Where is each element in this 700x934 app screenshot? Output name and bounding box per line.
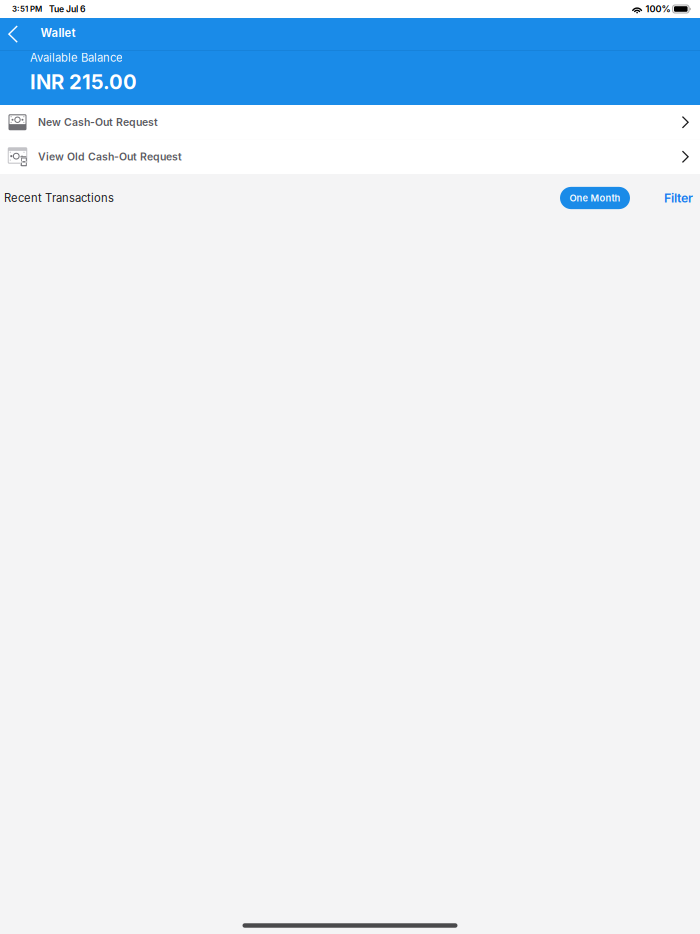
button[interactable]: One Month <box>560 187 630 209</box>
staticText: Tue Jul 6 <box>49 4 86 14</box>
staticText: Filter <box>664 190 693 205</box>
staticText: Recent Transactions <box>4 191 114 205</box>
button[interactable]: New Cash-Out Request <box>0 105 700 139</box>
button[interactable]: Back <box>0 18 26 50</box>
staticText: New Cash-Out Request <box>38 116 158 129</box>
staticText: Available Balance <box>30 51 123 65</box>
staticText: 3:51 PM <box>12 4 42 14</box>
button[interactable]: View Old Cash-Out Request <box>0 139 700 174</box>
staticText: Wallet <box>40 26 75 40</box>
staticText: INR 215.00 <box>30 70 137 94</box>
button[interactable]: Filter <box>630 184 700 211</box>
staticText: One Month <box>569 192 620 204</box>
staticText: 100% <box>646 3 671 14</box>
staticText: View Old Cash-Out Request <box>38 150 182 163</box>
